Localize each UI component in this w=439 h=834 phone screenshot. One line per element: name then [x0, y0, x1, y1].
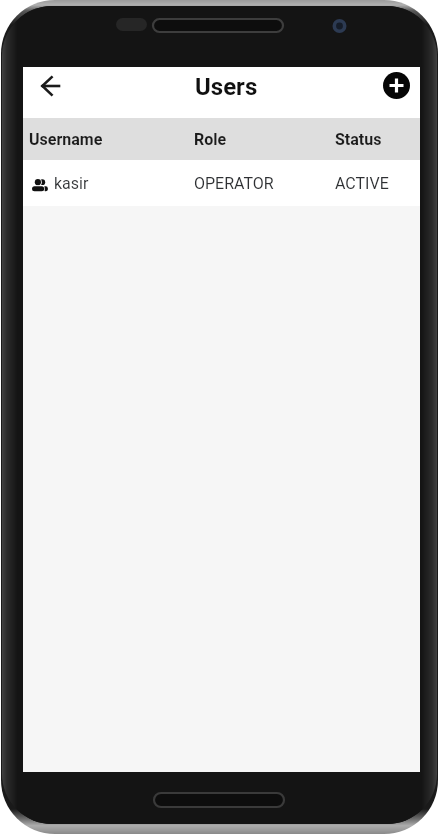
- staticText: Users: [195, 73, 258, 101]
- staticText: OPERATOR: [194, 174, 274, 193]
- staticText: Username: [29, 130, 103, 149]
- staticText: Role: [194, 130, 227, 149]
- staticText: Status: [335, 130, 382, 149]
- button[interactable]: [383, 72, 410, 99]
- staticText: kasir: [54, 174, 89, 193]
- button[interactable]: kasir: [23, 160, 420, 206]
- button[interactable]: [34, 69, 68, 103]
- staticText: ACTIVE: [335, 174, 389, 193]
